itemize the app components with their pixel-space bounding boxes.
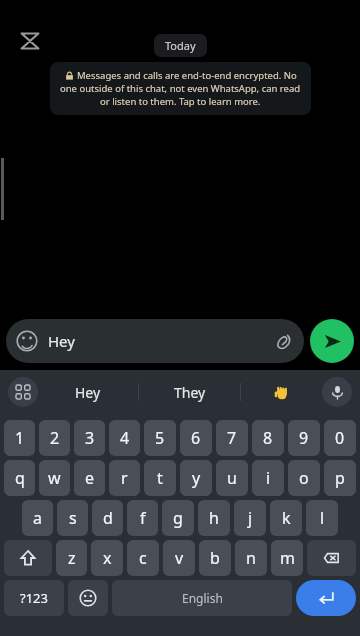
button[interactable]: English — [112, 580, 292, 616]
button[interactable]: f — [127, 500, 158, 536]
button[interactable]: Messages and calls are end-to-end encryp… — [60, 69, 301, 108]
button[interactable]: 7 — [216, 420, 248, 456]
button[interactable]: z — [56, 540, 87, 576]
button[interactable]: s — [57, 500, 88, 536]
button[interactable]: Voice input — [322, 377, 352, 407]
button[interactable]: q — [4, 460, 35, 496]
button[interactable]: 5 — [144, 420, 176, 456]
button[interactable]: 8 — [252, 420, 284, 456]
button[interactable]: Send — [310, 319, 354, 363]
button[interactable]: 9 — [288, 420, 320, 456]
button[interactable]: Hey — [38, 370, 138, 414]
staticText: 7 — [227, 427, 237, 449]
staticText: 2 — [50, 427, 60, 449]
button[interactable]: 3 — [74, 420, 105, 456]
staticText: v — [175, 547, 184, 569]
button[interactable]: Keyboard options — [8, 377, 38, 407]
staticText: i — [266, 467, 271, 489]
button[interactable]: c — [127, 540, 159, 576]
button[interactable]: b — [199, 540, 231, 576]
button[interactable]: d — [92, 500, 123, 536]
button[interactable]: e — [74, 460, 105, 496]
button[interactable]: a — [22, 500, 53, 536]
staticText: t — [157, 467, 163, 489]
staticText: 3 — [85, 427, 95, 449]
button[interactable]: 0 — [324, 420, 356, 456]
button[interactable]: ?123 — [4, 580, 64, 616]
button[interactable]: j — [234, 500, 266, 536]
staticText: 5 — [155, 427, 165, 449]
staticText: n — [246, 547, 256, 569]
staticText: Hey — [48, 331, 274, 351]
staticText: Messages and calls are end-to-end encryp… — [77, 69, 297, 82]
staticText: z — [68, 547, 76, 569]
staticText: Today — [165, 38, 196, 53]
button[interactable]: Wave emoji — [241, 370, 322, 414]
button[interactable]: x — [91, 540, 123, 576]
button[interactable]: Enter — [296, 580, 356, 616]
button[interactable]: They — [139, 370, 240, 414]
button[interactable]: l — [306, 500, 338, 536]
staticText: 0 — [335, 427, 345, 449]
staticText: k — [282, 507, 291, 529]
button[interactable]: g — [162, 500, 194, 536]
staticText: 4 — [120, 427, 130, 449]
other: Wave emoji — [273, 384, 290, 401]
button[interactable]: r — [109, 460, 140, 496]
button[interactable]: o — [288, 460, 320, 496]
button[interactable]: n — [235, 540, 267, 576]
staticText: b — [210, 547, 220, 569]
staticText: j — [248, 507, 253, 529]
button[interactable]: v — [163, 540, 195, 576]
staticText: s — [69, 507, 77, 529]
button[interactable]: m — [271, 540, 303, 576]
staticText: o — [299, 467, 309, 489]
staticText: a — [33, 507, 42, 529]
staticText: English — [182, 590, 223, 606]
button[interactable]: t — [144, 460, 176, 496]
staticText: one outside of this chat, not even Whats… — [60, 82, 301, 95]
button[interactable]: y — [180, 460, 212, 496]
button[interactable]: 6 — [180, 420, 212, 456]
staticText: f — [140, 507, 146, 529]
staticText: q — [15, 467, 25, 489]
button[interactable]: Shift — [4, 540, 52, 576]
other: Attach — [274, 331, 294, 351]
staticText: r — [121, 467, 128, 489]
staticText: 9 — [299, 427, 309, 449]
staticText: m — [280, 547, 295, 569]
staticText: g — [173, 507, 183, 529]
staticText: or listen to them. Tap to learn more. — [100, 95, 261, 108]
staticText: p — [335, 467, 345, 489]
staticText: ?123 — [20, 589, 48, 607]
button[interactable]: Backspace — [307, 540, 356, 576]
button[interactable]: Emoji — [6, 319, 304, 363]
other: Emoji — [16, 330, 38, 352]
staticText: x — [103, 547, 112, 569]
button[interactable]: 4 — [109, 420, 140, 456]
staticText: u — [227, 467, 237, 489]
button[interactable]: k — [270, 500, 302, 536]
button[interactable]: Emoji keyboard — [68, 580, 108, 616]
staticText: Hey — [75, 383, 101, 402]
button[interactable]: p — [324, 460, 356, 496]
staticText: 1 — [15, 427, 25, 449]
staticText: 8 — [263, 427, 273, 449]
button[interactable]: 2 — [39, 420, 70, 456]
staticText: They — [174, 383, 206, 402]
staticText: c — [139, 547, 147, 569]
button[interactable]: i — [252, 460, 284, 496]
staticText: d — [103, 507, 113, 529]
button[interactable]: w — [39, 460, 70, 496]
staticText: w — [48, 467, 61, 489]
button[interactable]: Today — [165, 38, 196, 53]
staticText: l — [320, 507, 325, 529]
staticText: h — [209, 507, 219, 529]
button[interactable]: h — [198, 500, 230, 536]
button[interactable]: u — [216, 460, 248, 496]
staticText: y — [192, 467, 201, 489]
button[interactable]: 1 — [4, 420, 35, 456]
staticText: 6 — [191, 427, 201, 449]
staticText: e — [85, 467, 95, 489]
